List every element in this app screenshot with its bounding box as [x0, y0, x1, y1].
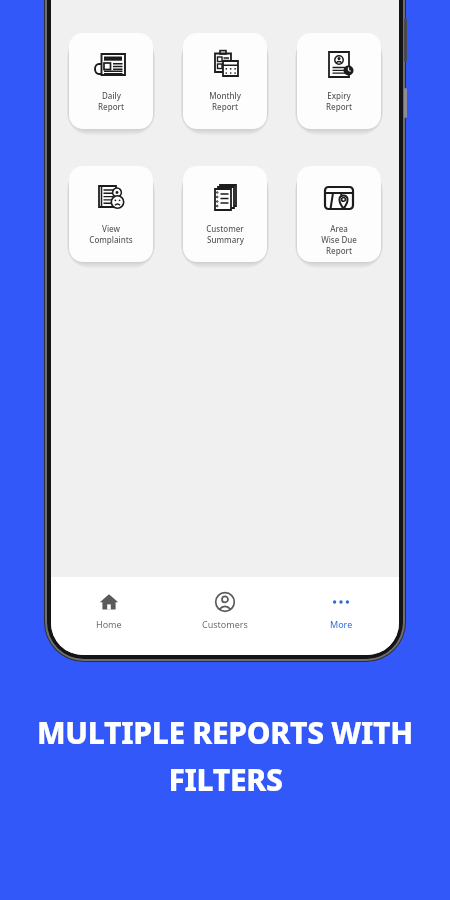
- button[interactable]: Daily: [69, 33, 153, 129]
- staticText: MULTIPLE REPORTS WITH: [37, 712, 413, 753]
- staticText: Daily: [102, 90, 121, 101]
- staticText: Customer: [206, 223, 244, 234]
- staticText: Report: [98, 101, 124, 112]
- button[interactable]: Expiry: [297, 33, 381, 129]
- other: Customers: [214, 591, 236, 613]
- other: More: [330, 591, 352, 613]
- staticText: View: [102, 223, 120, 234]
- staticText: FILTERS: [168, 759, 283, 800]
- button[interactable]: Area: [297, 166, 381, 262]
- staticText: Report: [212, 101, 238, 112]
- staticText: Monthly: [209, 90, 241, 101]
- staticText: Summary: [207, 234, 244, 245]
- button[interactable]: Monthly: [183, 33, 267, 129]
- staticText: Complaints: [89, 234, 133, 245]
- staticText: Expiry: [327, 90, 351, 101]
- staticText: Wise Due: [321, 234, 357, 245]
- staticText: Report: [326, 101, 352, 112]
- button[interactable]: More: [283, 577, 399, 655]
- button[interactable]: Home: [51, 577, 167, 655]
- staticText: Report: [326, 245, 352, 256]
- button[interactable]: Customers: [167, 577, 283, 655]
- staticText: More: [330, 618, 353, 630]
- staticText: Customers: [202, 618, 248, 630]
- other: Home: [98, 591, 120, 613]
- button[interactable]: View: [69, 166, 153, 262]
- staticText: Area: [330, 223, 348, 234]
- button[interactable]: Customer: [183, 166, 267, 262]
- staticText: Home: [96, 618, 122, 630]
